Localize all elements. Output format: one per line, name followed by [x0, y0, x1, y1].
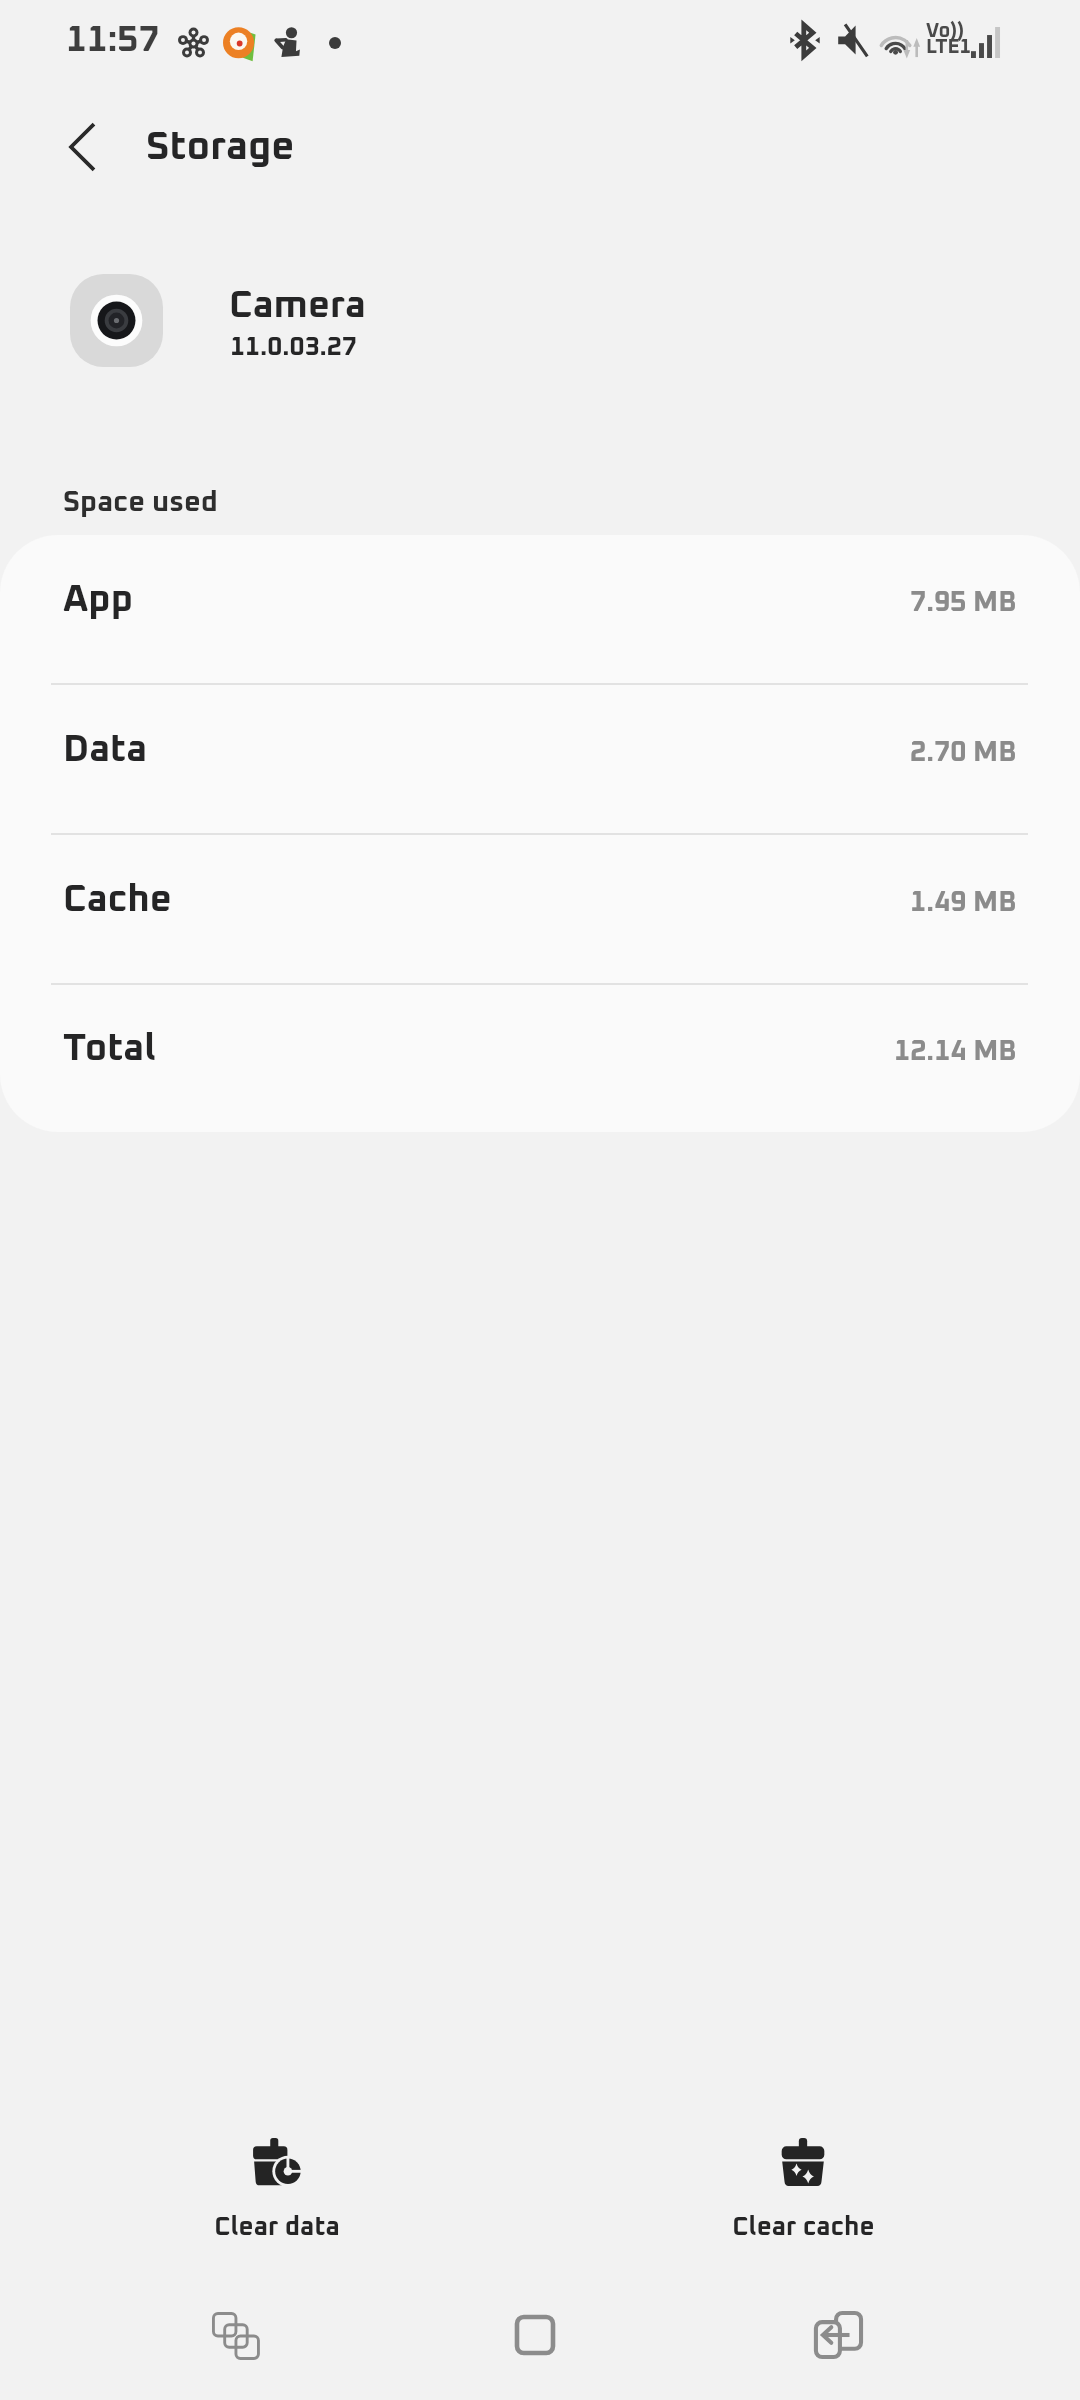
- staticText: Clear cache: [732, 2214, 875, 2240]
- staticText: 12.14 MB: [894, 1038, 1017, 1066]
- button[interactable]: Home: [445, 2280, 625, 2390]
- staticText: 11.0.03.27: [230, 334, 357, 360]
- button[interactable]: Clear data: [147, 2137, 407, 2240]
- staticText: App: [63, 581, 134, 619]
- button[interactable]: App: [0, 535, 1080, 684]
- staticText: Storage: [146, 127, 295, 167]
- staticText: Total: [63, 1030, 157, 1068]
- staticText: Camera: [229, 287, 366, 325]
- staticText: 1.49 MB: [910, 889, 1017, 917]
- staticText: Data: [63, 731, 148, 769]
- staticText: Space used: [63, 488, 218, 517]
- button[interactable]: Total: [0, 984, 1080, 1132]
- button[interactable]: Data: [0, 685, 1080, 834]
- button[interactable]: Cache: [0, 835, 1080, 984]
- button[interactable]: Back: [748, 2280, 928, 2390]
- staticText: Clear data: [214, 2214, 340, 2240]
- staticText: 2.70 MB: [910, 739, 1017, 767]
- staticText: LTE1: [926, 37, 972, 57]
- staticText: 11:57: [66, 23, 160, 59]
- button[interactable]: Recent apps: [144, 2280, 324, 2390]
- staticText: Vo)): [926, 21, 965, 41]
- button[interactable]: Clear cache: [673, 2137, 933, 2240]
- staticText: Cache: [63, 881, 172, 919]
- staticText: 7.95 MB: [910, 589, 1017, 617]
- button[interactable]: Back: [44, 107, 124, 187]
